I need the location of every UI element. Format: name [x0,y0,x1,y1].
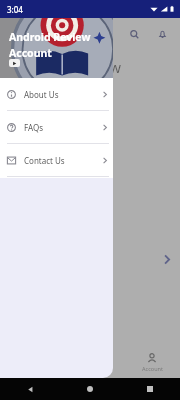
staticText: Android Review [9,30,91,44]
staticText: FAQs [24,122,44,133]
button[interactable]: Recent apps [120,378,180,400]
staticText: Account [9,46,52,60]
staticText: Android Review Account [12,57,180,77]
button[interactable]: Account [128,353,176,372]
staticText: 3:04 [7,4,23,15]
staticText: About Us [24,89,59,100]
staticText: Contact Us [24,155,65,166]
button[interactable] [0,242,180,276]
button[interactable]: Contact Us [0,144,113,176]
button[interactable]: YouTube channel [9,59,20,67]
staticText: Account [142,365,163,372]
button[interactable]: Notifications [152,24,172,44]
button[interactable]: About Us [0,78,113,110]
button[interactable]: Home [60,378,120,400]
button[interactable]: Search [124,24,144,44]
button[interactable]: FAQs [0,111,113,143]
button[interactable]: Back [0,378,60,400]
